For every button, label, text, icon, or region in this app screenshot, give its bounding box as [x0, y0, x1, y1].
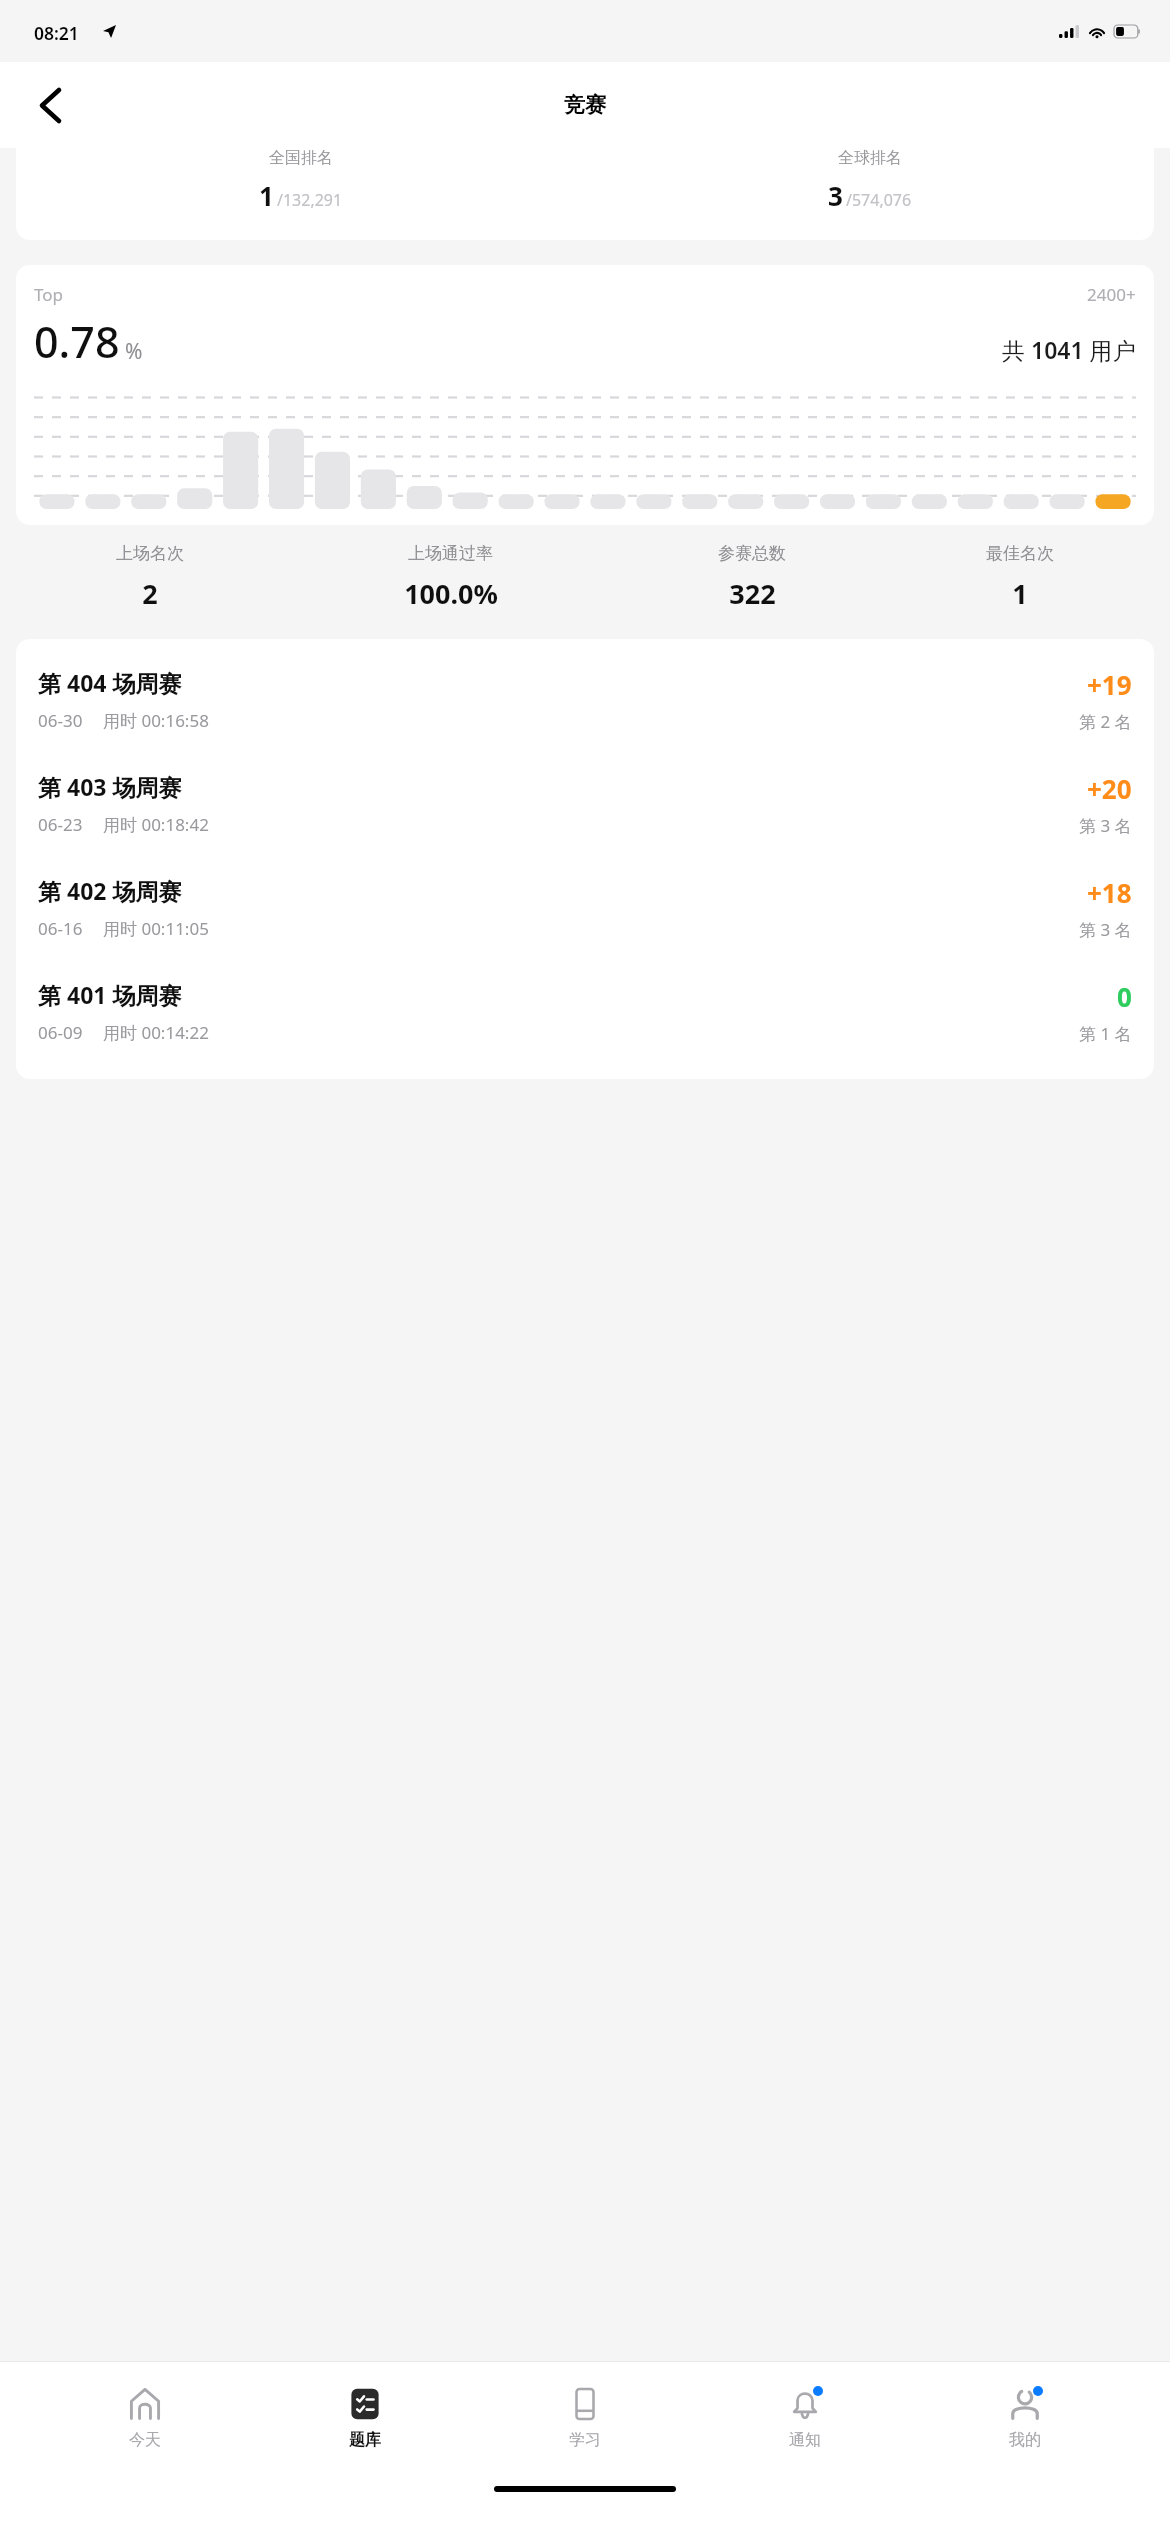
- button[interactable]: Back: [22, 77, 78, 133]
- staticText: 0.78: [34, 312, 120, 371]
- staticText: +20: [1087, 771, 1132, 806]
- staticText: 第 3 名: [1079, 918, 1132, 941]
- staticText: 全球排名: [838, 148, 902, 168]
- staticText: 06-09: [38, 1021, 83, 1044]
- staticText: 我的: [1009, 2430, 1041, 2450]
- staticText: 100.0%: [404, 575, 498, 612]
- button[interactable]: 第 401 场周赛: [16, 969, 1154, 1055]
- staticText: 用时 00:18:42: [103, 813, 209, 836]
- staticText: 竞赛: [564, 92, 606, 118]
- staticText: 06-30: [38, 709, 83, 732]
- staticText: 08:21: [34, 21, 79, 45]
- button[interactable]: 题库: [290, 2381, 440, 2456]
- staticText: 第 402 场周赛: [38, 875, 182, 906]
- staticText: 全国排名: [269, 148, 333, 168]
- staticText: +18: [1087, 875, 1132, 910]
- staticText: 第 3 名: [1079, 814, 1132, 837]
- staticText: 1: [1012, 575, 1028, 612]
- staticText: 学习: [569, 2430, 601, 2450]
- staticText: 第 2 名: [1079, 710, 1132, 733]
- staticText: 最佳名次: [986, 543, 1054, 564]
- staticText: 3: [828, 178, 843, 213]
- staticText: 06-23: [38, 813, 83, 836]
- button[interactable]: 通知: [730, 2381, 880, 2456]
- staticText: 1: [259, 178, 274, 213]
- staticText: 共 1041 用户: [1002, 334, 1136, 365]
- button[interactable]: 学习: [510, 2381, 660, 2456]
- staticText: 322: [729, 575, 776, 612]
- staticText: %: [125, 337, 143, 366]
- staticText: 今天: [129, 2430, 161, 2450]
- button[interactable]: 第 402 场周赛: [16, 865, 1154, 951]
- staticText: 06-16: [38, 917, 83, 940]
- staticText: 用时 00:14:22: [103, 1021, 209, 1044]
- staticText: /574,076: [846, 189, 912, 211]
- staticText: 用时 00:16:58: [103, 709, 209, 732]
- staticText: 第 1 名: [1079, 1022, 1132, 1045]
- button[interactable]: 今天: [70, 2381, 220, 2456]
- staticText: 参赛总数: [718, 543, 786, 564]
- staticText: 第 401 场周赛: [38, 979, 182, 1010]
- staticText: /132,291: [277, 189, 343, 211]
- staticText: Top: [34, 283, 64, 306]
- staticText: 0: [1117, 979, 1132, 1014]
- button[interactable]: 第 404 场周赛: [16, 657, 1154, 743]
- staticText: +19: [1087, 667, 1132, 702]
- staticText: 通知: [789, 2430, 821, 2450]
- staticText: 第 404 场周赛: [38, 667, 182, 698]
- staticText: 题库: [349, 2430, 381, 2450]
- staticText: 上场通过率: [408, 543, 493, 564]
- staticText: 上场名次: [116, 543, 184, 564]
- button[interactable]: 我的: [950, 2381, 1100, 2456]
- staticText: 第 403 场周赛: [38, 771, 182, 802]
- button[interactable]: 第 403 场周赛: [16, 761, 1154, 847]
- staticText: 2400+: [1087, 283, 1136, 306]
- staticText: 用时 00:11:05: [103, 917, 209, 940]
- staticText: 2: [142, 575, 158, 612]
